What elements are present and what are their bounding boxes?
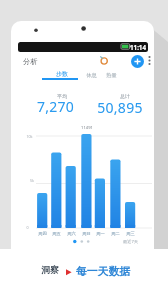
staticText: 10k [26, 134, 33, 139]
button[interactable] [99, 55, 110, 66]
button[interactable]: 休息 [46, 65, 136, 85]
staticText: 周一 [96, 231, 105, 236]
staticText: 11491 [81, 125, 93, 131]
staticText: 周四 [38, 231, 47, 236]
staticText: 周五 [52, 231, 61, 236]
button[interactable]: 步数 [17, 64, 107, 84]
staticText: 11:14 [130, 43, 146, 51]
staticText: 总计 [120, 93, 130, 99]
staticText: 50,895 [97, 98, 143, 117]
button[interactable]: 每一天数据 [58, 262, 148, 282]
staticText: 周二 [111, 231, 120, 236]
button[interactable] [131, 55, 144, 68]
staticText: 周六 [67, 231, 76, 236]
staticText: 0 [26, 225, 29, 230]
staticText: 分析 [23, 57, 38, 66]
button[interactable]: 分析 [0, 51, 75, 71]
staticText: 休息 [86, 72, 97, 79]
staticText: 7,270 [37, 97, 74, 116]
button[interactable]: 热量 [66, 65, 156, 85]
staticText: 步数 [56, 70, 68, 78]
staticText: 最近7天 [123, 239, 138, 245]
staticText: 周三 [126, 231, 135, 236]
staticText: 洞察 [41, 265, 59, 276]
button[interactable]: 洞察 [5, 260, 95, 280]
staticText: 热量 [106, 72, 117, 79]
staticText: 5k [30, 178, 34, 183]
staticText: 平均 [57, 93, 67, 99]
staticText: 周日 [82, 231, 91, 236]
staticText: 每一天数据 [76, 265, 130, 279]
button[interactable] [145, 54, 154, 67]
